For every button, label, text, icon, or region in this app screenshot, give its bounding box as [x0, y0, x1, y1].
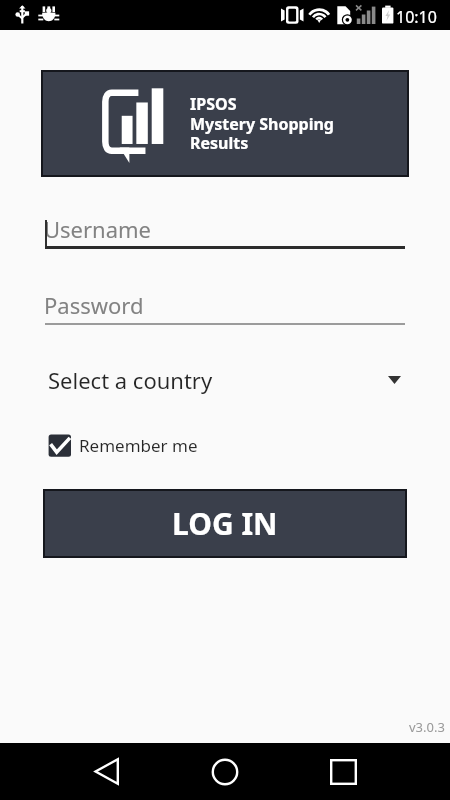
staticText: 10:10 [396, 6, 437, 28]
button[interactable]: Back [76, 743, 136, 800]
staticText: Password [44, 290, 144, 320]
button[interactable]: Home [195, 743, 255, 800]
staticText: v3.0.3 [409, 718, 445, 736]
staticText: Select a country [48, 365, 213, 395]
button[interactable]: Remember me [47, 432, 198, 458]
staticText: Username [44, 214, 152, 244]
staticText: IPSOS [190, 93, 237, 115]
staticText: Results [190, 132, 249, 154]
staticText: LOG IN [172, 503, 278, 544]
button[interactable]: Username [45, 207, 405, 249]
button[interactable]: Select a country [45, 360, 405, 402]
button[interactable]: Password [45, 283, 405, 325]
button[interactable]: Recent apps [313, 743, 373, 800]
button[interactable]: LOG IN [43, 489, 407, 558]
staticText: Remember me [79, 434, 198, 457]
staticText: Mystery Shopping [190, 113, 334, 135]
